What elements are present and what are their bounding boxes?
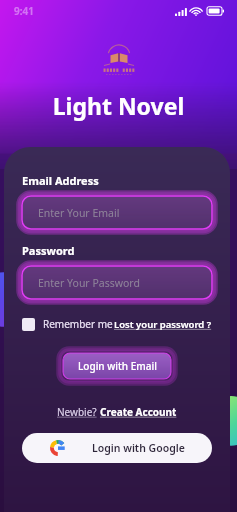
button[interactable]: Lost your password ?: [114, 318, 212, 331]
button[interactable]: Login with Google: [22, 433, 212, 463]
staticText: Enter Your Email: [38, 206, 120, 220]
button[interactable]: Login with Email: [63, 353, 171, 379]
staticText: Create Account: [100, 405, 177, 419]
staticText: Remember me: [43, 317, 113, 331]
staticText: Light Novel: [0, 90, 237, 121]
staticText: 9:41: [14, 4, 34, 18]
button[interactable]: Newbie?: [57, 405, 177, 419]
staticText: Newbie?: [57, 405, 100, 419]
staticText: Login with Google: [92, 441, 185, 455]
button[interactable]: Enter Your Password: [22, 266, 212, 299]
staticText: Enter Your Password: [38, 276, 140, 290]
button[interactable]: Remember me: [22, 317, 113, 331]
staticText: Password: [22, 243, 75, 258]
staticText: Login with Email: [78, 359, 157, 373]
button[interactable]: Enter Your Email: [22, 196, 212, 229]
staticText: Email Address: [22, 173, 99, 188]
